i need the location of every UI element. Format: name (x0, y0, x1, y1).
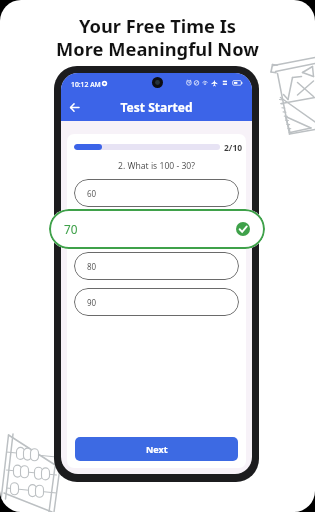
staticText: Test Started (61, 99, 252, 115)
staticText: Next (146, 443, 168, 455)
staticText: 90 (87, 297, 97, 308)
button[interactable]: 90 (74, 288, 239, 316)
button[interactable]: Next (75, 437, 238, 461)
staticText: 10:12 AM (71, 80, 101, 89)
staticText: 80 (87, 261, 97, 272)
staticText: 2. What is 100 - 30? (67, 160, 246, 172)
staticText: 60 (87, 188, 97, 199)
staticText: 70 (64, 221, 78, 237)
button[interactable]: 70 (74, 216, 239, 244)
button[interactable]: 60 (74, 179, 239, 207)
staticText: Your Free Time Is More Meaningful Now (0, 13, 315, 61)
button[interactable]: Back (65, 98, 84, 117)
staticText: 2/10 (224, 142, 243, 154)
button[interactable]: 80 (74, 252, 239, 280)
button[interactable]: 70 (49, 209, 265, 249)
